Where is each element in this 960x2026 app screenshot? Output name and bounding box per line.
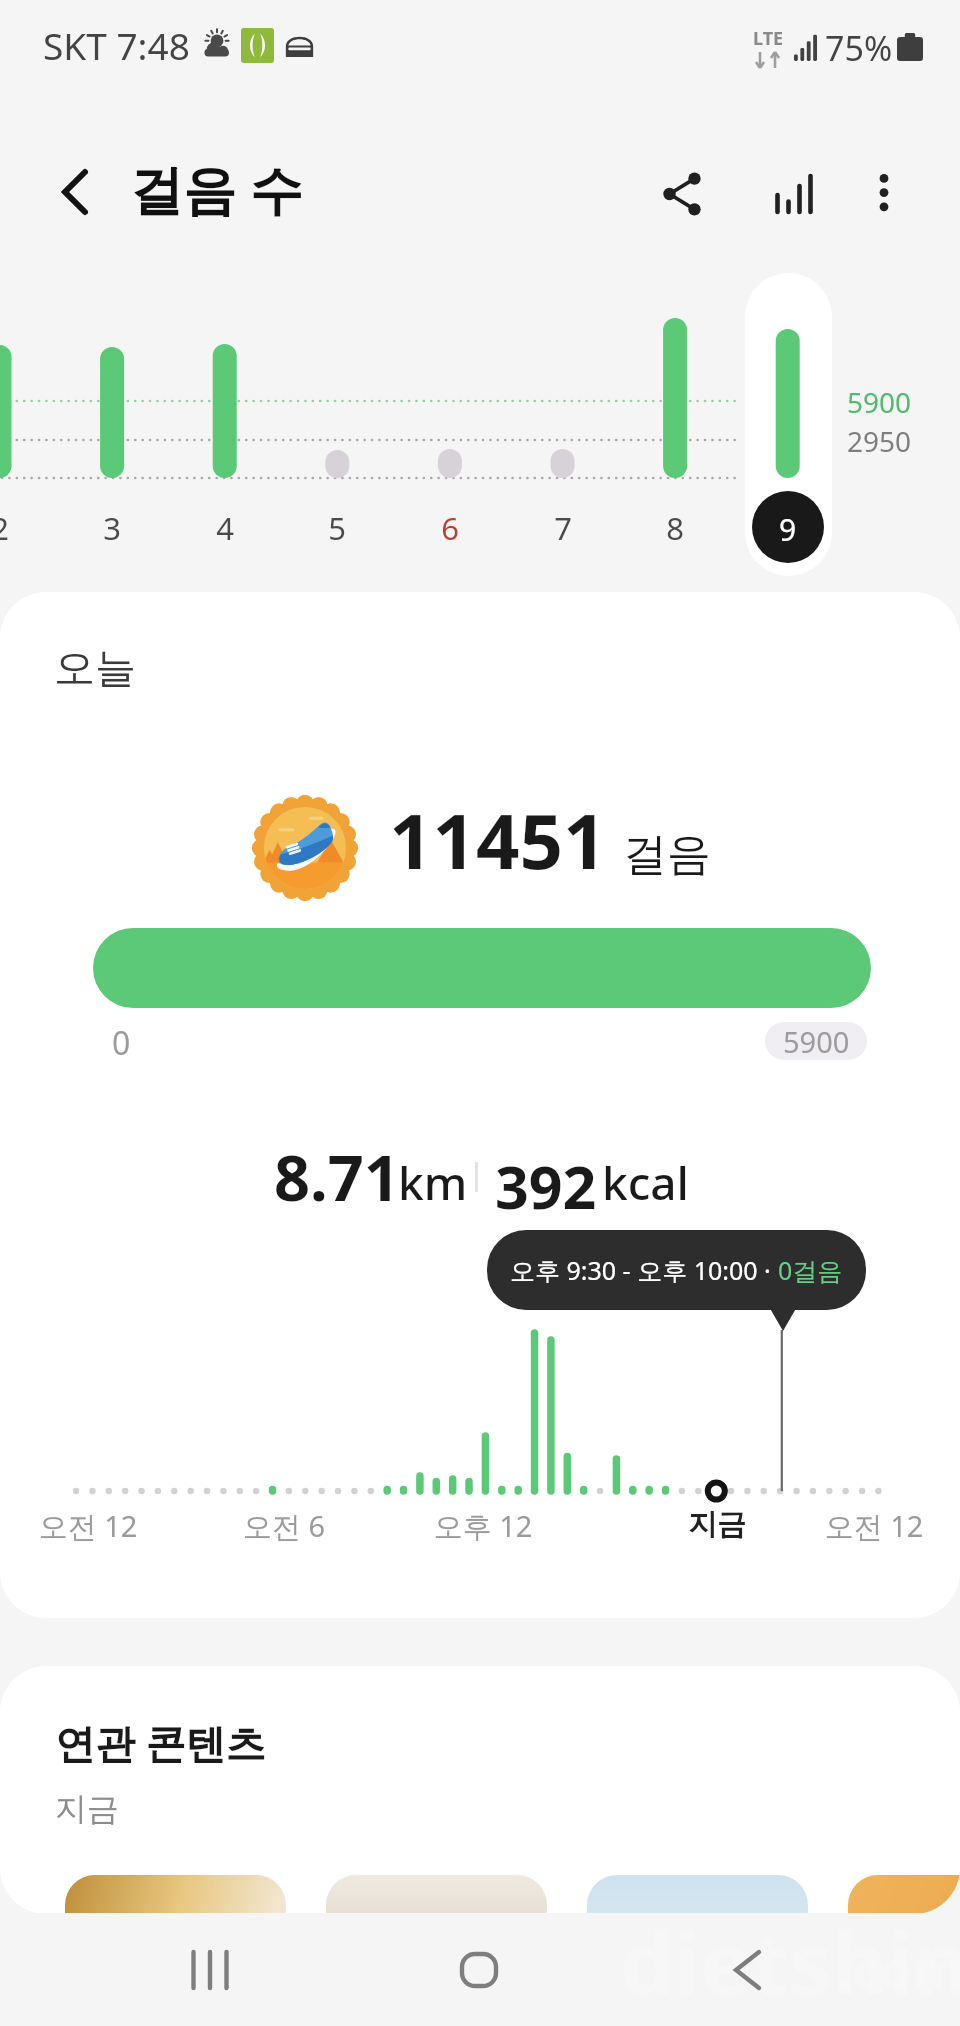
button[interactable] <box>745 273 832 576</box>
button[interactable]: Back <box>691 1913 803 2026</box>
staticText: 2 <box>0 507 40 549</box>
staticText: SKT 7:48 <box>43 20 190 70</box>
staticText: 걸음 <box>623 827 711 882</box>
staticText: 오전 6 <box>174 1506 394 1546</box>
staticText: 8 <box>635 507 715 549</box>
staticText: 오전 12 <box>0 1506 198 1546</box>
button[interactable] <box>587 1875 808 1914</box>
staticText: kcal <box>602 1151 690 1214</box>
staticText: 지금 <box>607 1506 827 1543</box>
staticText: 7 <box>523 507 603 549</box>
button[interactable]: Statistics <box>738 138 850 250</box>
staticText: 11451 <box>389 788 607 892</box>
staticText: dietshin <box>620 1903 960 2020</box>
staticText: 392 <box>495 1146 597 1226</box>
staticText: 걸음 수 <box>130 152 303 224</box>
staticText: 5 <box>297 507 377 549</box>
staticText: 오전 12 <box>764 1506 960 1546</box>
button[interactable] <box>326 1875 547 1914</box>
staticText: 9 <box>779 509 797 550</box>
staticText: 0 <box>112 1021 131 1065</box>
button[interactable]: Back <box>19 136 131 248</box>
button[interactable]: 9 <box>752 491 824 563</box>
staticText: 4 <box>185 507 265 549</box>
staticText: 5900 <box>847 383 912 421</box>
staticText: 6 <box>410 507 490 549</box>
staticText: 0걸음 <box>778 1253 843 1287</box>
button[interactable]: 오후 9:30 - 오후 10:00 · <box>487 1230 866 1310</box>
button[interactable] <box>848 1875 960 1914</box>
staticText: km <box>398 1151 468 1214</box>
staticText: 3 <box>72 507 152 549</box>
staticText: 오후 9:30 - 오후 10:00 · <box>510 1253 778 1287</box>
button[interactable] <box>65 1875 286 1914</box>
staticText: 75% <box>825 25 893 71</box>
staticText: 연관 콘텐츠 <box>55 1715 266 1770</box>
staticText: 지금 <box>55 1789 119 1829</box>
button[interactable]: More options <box>850 138 960 250</box>
staticText: 2950 <box>847 422 912 460</box>
staticText: 오후 12 <box>373 1506 593 1546</box>
staticText: 8.71 <box>274 1134 400 1220</box>
staticText: 5900 <box>783 1022 850 1060</box>
button[interactable]: Recent apps <box>154 1913 266 2026</box>
button[interactable]: Home <box>423 1913 535 2026</box>
button[interactable]: Share <box>626 138 738 250</box>
staticText: 오늘 <box>54 643 136 695</box>
staticText: LTE <box>753 26 784 51</box>
